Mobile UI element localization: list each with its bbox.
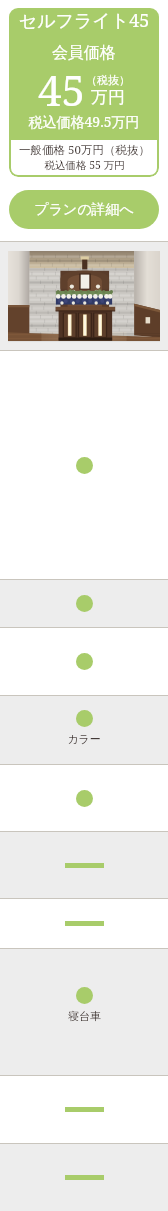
button[interactable]: カラー	[0, 696, 168, 764]
button[interactable]	[0, 1076, 168, 1143]
button[interactable]	[0, 899, 168, 948]
button[interactable]	[0, 765, 168, 831]
button[interactable]	[0, 1144, 168, 1211]
button[interactable]	[0, 832, 168, 898]
staticText: （税抜）	[86, 73, 130, 87]
button[interactable]: 寝台車	[0, 949, 168, 1075]
staticText: 税込価格49.5万円	[9, 112, 159, 131]
staticText: 会員価格	[9, 43, 159, 63]
staticText: カラー	[67, 732, 101, 746]
staticText: 45	[38, 61, 85, 118]
staticText: 寝台車	[68, 1009, 101, 1023]
staticText: セルフライト45	[9, 8, 159, 33]
button[interactable]	[0, 628, 168, 695]
staticText: 万円	[91, 87, 125, 108]
staticText: 税込価格 55 万円	[44, 158, 125, 172]
staticText: 一般価格 50万円（税抜）	[19, 142, 150, 158]
staticText: プランの詳細へ	[34, 201, 134, 219]
button[interactable]	[0, 351, 168, 579]
button[interactable]: プランの詳細へ	[9, 190, 159, 229]
button[interactable]	[0, 580, 168, 627]
